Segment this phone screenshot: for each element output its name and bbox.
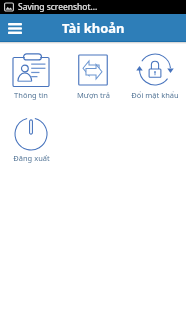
staticText: Đổi mật khẩu xyxy=(131,90,179,100)
button[interactable]: Đăng xuất xyxy=(0,114,62,177)
button[interactable]: Đổi mật khẩu xyxy=(124,51,186,114)
button[interactable]: Thông tin xyxy=(0,51,62,114)
button[interactable]: Menu xyxy=(4,17,26,39)
staticText: Mượn trả xyxy=(77,90,110,100)
staticText: Đăng xuất xyxy=(13,153,50,163)
staticText: Tài khoản xyxy=(62,19,125,37)
staticText: Thông tin xyxy=(14,90,48,100)
button[interactable]: Mượn trả xyxy=(62,51,124,114)
staticText: Saving screenshot... xyxy=(18,1,98,13)
